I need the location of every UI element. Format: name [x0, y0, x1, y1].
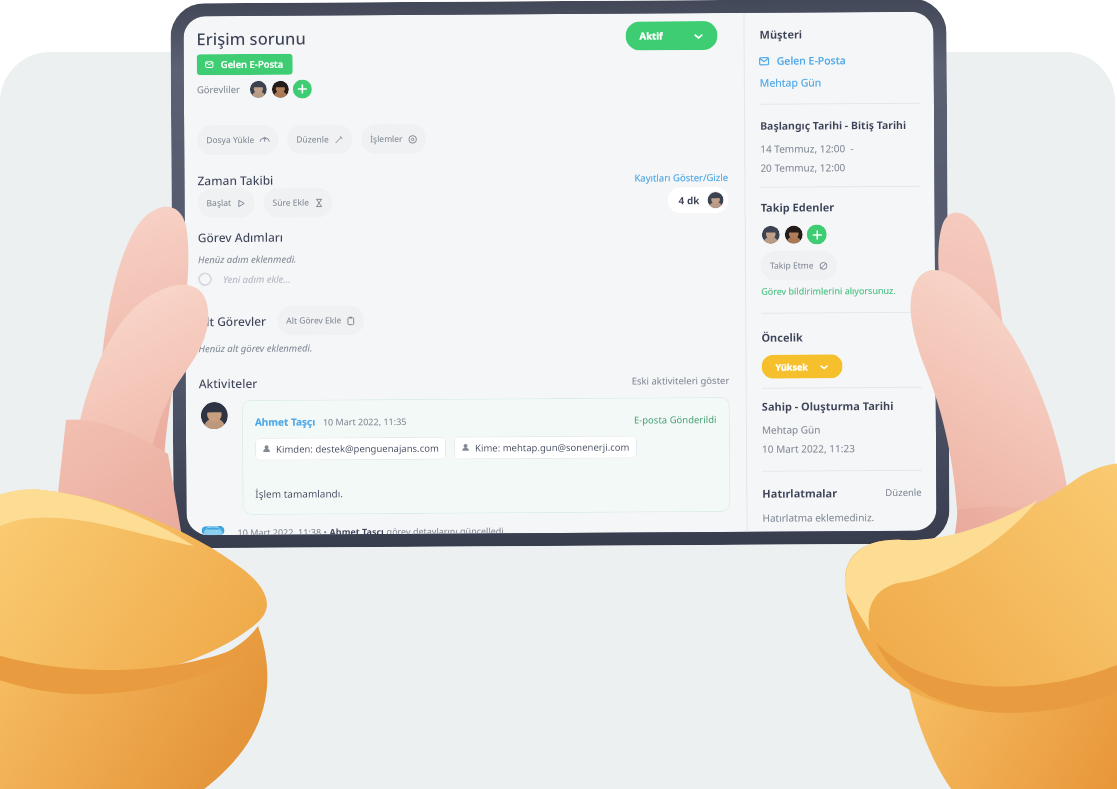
button[interactable]: Görevli ekle [293, 79, 312, 99]
staticText: İşlemler [370, 133, 403, 145]
staticText: Dosya Yükle [206, 134, 255, 146]
staticText: Başlat [206, 197, 232, 209]
staticText: Zaman Takibi [197, 172, 273, 188]
staticText: Hatırlatmalar [762, 485, 837, 501]
staticText: E-posta Gönderildi [634, 413, 717, 426]
staticText: Görev bildirimlerini alıyorsunuz. [761, 284, 896, 297]
staticText: 20 Temmuz, 12:00 [760, 160, 845, 175]
button[interactable]: Takipçi ekle [807, 224, 827, 244]
staticText: Takip Etme [770, 259, 814, 272]
staticText: Süre Ekle [272, 196, 310, 209]
staticText: Takip Edenler [761, 199, 835, 215]
staticText: Düzenle [296, 133, 329, 146]
staticText: Mehtap Gün [762, 422, 821, 437]
staticText: görev detaylarını güncelledi [386, 524, 505, 534]
staticText: Henüz alt görev eklenmedi. [198, 341, 312, 355]
staticText: Aktiviteler [199, 375, 258, 391]
button[interactable]: Süre Ekle [263, 187, 333, 218]
staticText: Alt Görevler [198, 313, 266, 329]
button[interactable]: Kayıtları Göster/Gizle [634, 171, 728, 185]
staticText: Ahmet Taşçı [255, 414, 316, 429]
staticText: Öncelik [761, 329, 803, 345]
button[interactable]: Alt Görev Ekle [277, 305, 364, 336]
staticText: Müşteri [759, 26, 803, 42]
button[interactable]: İşlemler [361, 124, 426, 154]
staticText: 14 Temmuz, 12:00 - [760, 141, 854, 156]
staticText: Aktif [639, 29, 664, 42]
staticText: İşlem tamamlandı. [255, 486, 343, 501]
staticText: Henüz adım eklenmedi. [198, 253, 297, 266]
staticText: Görevliler [197, 83, 241, 96]
button[interactable]: Düzenle [885, 486, 922, 499]
staticText: 10 Mart 2022, 11:38 • [237, 525, 330, 535]
button[interactable]: 4 dk [667, 187, 729, 213]
button[interactable]: Takip Etme [761, 250, 837, 281]
button[interactable]: Eski aktiviteleri göster [632, 374, 730, 388]
staticText: Yeni adım ekle... [223, 273, 291, 286]
button[interactable]: Aktif [625, 21, 718, 51]
button[interactable]: Kime: mehtap.gun@sonenerji.com [454, 435, 637, 460]
staticText: Alt Görev Ekle [286, 314, 341, 327]
staticText: Sahip - Oluşturma Tarihi [762, 398, 894, 414]
button[interactable]: Gelen E-Posta [197, 54, 293, 75]
button[interactable]: Kimden: destek@penguenajans.com [255, 437, 446, 461]
staticText: 10 Mart 2022, 11:35 [323, 415, 407, 427]
staticText: Gelen E-Posta [221, 58, 284, 71]
button[interactable]: Mehtap Gün [760, 75, 822, 90]
staticText: Yüksek [775, 360, 809, 373]
staticText: Görev Adımları [198, 229, 284, 245]
staticText: Başlangıç Tarihi - Bitiş Tarihi [760, 118, 906, 133]
staticText: 4 dk [678, 193, 700, 207]
button[interactable]: Başlat [197, 188, 255, 218]
staticText: Hatırlatma eklemediniz. [762, 510, 875, 525]
button[interactable]: Gelen E-Posta [760, 53, 847, 68]
staticText: 10 Mart 2022, 11:23 [762, 441, 855, 456]
staticText: Erişim sorunu [196, 26, 307, 49]
staticText: Ahmet Taşçı [329, 525, 387, 534]
staticText: Gelen E-Posta [777, 53, 847, 68]
staticText: Kime: mehtap.gun@sonenerji.com [475, 441, 630, 454]
button[interactable]: Yüksek [761, 354, 843, 379]
staticText: Kimden: destek@penguenajans.com [276, 442, 439, 456]
button[interactable]: Dosya Yükle [197, 125, 278, 155]
button[interactable]: Düzenle [287, 124, 352, 155]
